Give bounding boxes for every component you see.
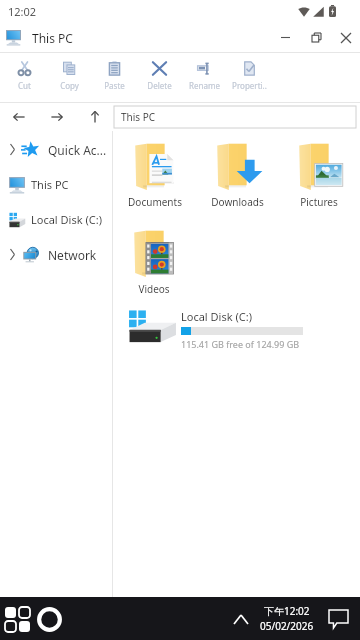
button[interactable]: Back (0, 103, 38, 131)
staticText: Downloads (211, 195, 264, 209)
staticText: Network (48, 247, 97, 263)
staticText: This PC (31, 177, 69, 192)
button[interactable]: Copy (47, 53, 92, 103)
staticText: Paste (104, 80, 125, 91)
staticText: Pictures (300, 195, 338, 209)
staticText: 05/02/2026 (260, 619, 314, 633)
button[interactable]: Forward (38, 103, 76, 131)
button[interactable]: Recent apps (4, 606, 30, 632)
button[interactable]: Local Disk (C:) (127, 309, 360, 349)
button[interactable]: Local Disk (C:) (0, 202, 112, 237)
staticText: 下午12:02 (264, 604, 310, 618)
staticText: Properti.. (232, 80, 267, 91)
staticText: This PC (121, 110, 156, 124)
button[interactable]: Pictures (278, 143, 360, 209)
button[interactable]: Notifications (326, 607, 350, 631)
button[interactable]: Documents (113, 143, 196, 209)
button[interactable]: Minimize (269, 22, 302, 53)
staticText: Cut (18, 80, 31, 91)
button[interactable]: Network (0, 237, 112, 272)
staticText: 12:02 (8, 4, 37, 19)
button[interactable]: 下午12:02 (260, 604, 314, 633)
button[interactable]: Restore (302, 22, 331, 53)
button[interactable]: Paste (92, 53, 137, 103)
staticText: Local Disk (C:) (181, 309, 252, 324)
staticText: This PC (32, 30, 73, 46)
button[interactable]: Delete (137, 53, 182, 103)
button[interactable]: Quick Ac... (0, 132, 112, 167)
button[interactable]: Rename (182, 53, 227, 103)
button[interactable]: Downloads (196, 143, 278, 209)
button[interactable]: Close (331, 22, 360, 53)
button[interactable]: Home (36, 606, 62, 632)
button[interactable]: This PC (0, 167, 112, 202)
button[interactable]: Cut (2, 53, 47, 103)
button[interactable]: Videos (113, 230, 195, 296)
staticText: Local Disk (C:) (31, 212, 102, 227)
staticText: Quick Ac... (48, 142, 107, 158)
staticText: Rename (189, 80, 220, 91)
staticText: 115.41 GB free of 124.99 GB (181, 338, 300, 349)
staticText: Copy (60, 80, 79, 91)
button[interactable]: This PC (114, 106, 356, 128)
staticText: Documents (128, 195, 182, 209)
button[interactable]: Properti.. (227, 53, 272, 103)
staticText: Videos (138, 282, 170, 296)
button[interactable]: Show hidden icons (230, 608, 252, 630)
staticText: Delete (147, 80, 172, 91)
button[interactable]: Up (76, 103, 114, 131)
